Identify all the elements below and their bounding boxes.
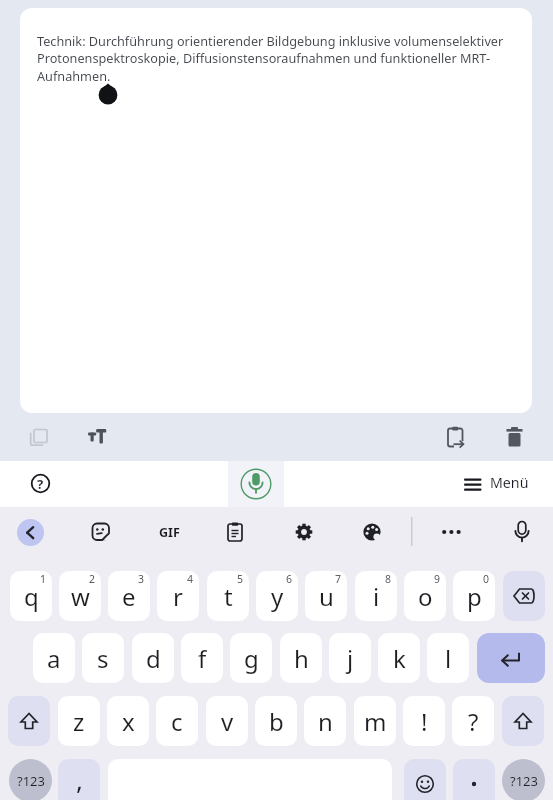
staticText: 8 (385, 572, 392, 586)
staticText: Technik: Durchführung orientierender Bil… (37, 32, 504, 85)
staticText: ?123 (510, 772, 538, 790)
staticText: b (269, 705, 284, 738)
button[interactable]: u (305, 571, 347, 621)
staticText: 2 (89, 572, 96, 586)
staticText: q (24, 580, 39, 613)
staticText: p (467, 580, 482, 613)
button[interactable]: ! (403, 696, 445, 746)
staticText: w (71, 580, 90, 613)
staticText: r (173, 580, 183, 613)
button[interactable] (404, 759, 446, 800)
button[interactable]: c (156, 696, 198, 746)
button[interactable]: i (355, 571, 397, 621)
staticText: d (146, 642, 161, 675)
staticText: 1 (40, 572, 47, 586)
staticText: j (347, 642, 354, 675)
button[interactable]: f (181, 633, 223, 683)
button[interactable]: ? (28, 471, 53, 496)
button[interactable] (446, 426, 468, 448)
staticText: ? (468, 705, 479, 738)
button[interactable] (453, 759, 495, 800)
staticText: 7 (335, 572, 342, 586)
staticText: 5 (237, 572, 244, 586)
button[interactable]: e (108, 571, 150, 621)
button[interactable]: k (378, 633, 420, 683)
button[interactable]: m (354, 696, 396, 746)
staticText: GIF (159, 524, 180, 541)
button[interactable] (29, 428, 49, 448)
button[interactable] (477, 633, 545, 683)
button[interactable] (503, 571, 545, 621)
staticText: i (373, 580, 380, 613)
button[interactable]: y (256, 571, 298, 621)
button[interactable] (441, 522, 462, 542)
staticText: z (73, 705, 85, 738)
staticText: h (294, 642, 309, 675)
staticText: s (97, 642, 109, 675)
staticText: v (221, 705, 234, 738)
button[interactable]: p (453, 571, 495, 621)
staticText: k (393, 642, 406, 675)
staticText: ? (37, 475, 44, 493)
staticText: g (244, 642, 259, 675)
staticText: , (76, 762, 83, 797)
button[interactable]: g (230, 633, 272, 683)
button[interactable]: j (329, 633, 371, 683)
button[interactable]: a (33, 633, 75, 683)
button[interactable]: ?123 (502, 759, 545, 800)
button[interactable]: GIF (152, 523, 186, 541)
button[interactable] (294, 522, 314, 542)
button[interactable] (8, 696, 50, 746)
button[interactable]: v (206, 696, 248, 746)
staticText: y (271, 580, 284, 613)
button[interactable]: b (255, 696, 297, 746)
button[interactable] (17, 519, 44, 546)
button[interactable]: q (10, 571, 52, 621)
staticText: u (319, 580, 334, 613)
staticText: m (364, 705, 387, 738)
staticText: 0 (483, 572, 490, 586)
staticText: 6 (286, 572, 293, 586)
button[interactable]: z (58, 696, 100, 746)
button[interactable]: o (404, 571, 446, 621)
button[interactable]: s (82, 633, 124, 683)
staticText: c (171, 705, 183, 738)
staticText: n (318, 705, 333, 738)
button[interactable] (88, 429, 108, 445)
button[interactable]: t (207, 571, 249, 621)
button[interactable]: d (132, 633, 174, 683)
staticText: l (445, 642, 452, 675)
staticText: f (198, 642, 207, 675)
staticText: 9 (434, 572, 441, 586)
button[interactable]: Technik: Durchführung orientierender Bil… (20, 8, 532, 413)
button[interactable]: ? (452, 696, 494, 746)
button[interactable] (505, 427, 524, 447)
button[interactable] (502, 696, 544, 746)
staticText: x (122, 705, 135, 738)
button[interactable] (512, 521, 532, 543)
button[interactable]: w (59, 571, 101, 621)
button[interactable]: l (427, 633, 469, 683)
staticText: 4 (187, 572, 194, 586)
staticText: a (47, 642, 61, 675)
staticText: o (418, 580, 433, 613)
staticText: Menü (490, 473, 529, 492)
button[interactable] (91, 522, 111, 542)
staticText: t (224, 580, 233, 613)
staticText: 3 (138, 572, 145, 586)
button[interactable] (228, 461, 284, 507)
staticText: ?123 (17, 772, 45, 790)
button[interactable] (362, 522, 382, 542)
button[interactable]: Menü (456, 468, 536, 498)
button[interactable]: ?123 (9, 759, 52, 800)
button[interactable]: , (58, 759, 100, 800)
button[interactable]: r (157, 571, 199, 621)
button[interactable]: h (280, 633, 322, 683)
button[interactable] (225, 522, 245, 542)
staticText: e (122, 580, 136, 613)
button[interactable]: n (304, 696, 346, 746)
button[interactable]: x (107, 696, 149, 746)
staticText: ! (421, 705, 428, 738)
